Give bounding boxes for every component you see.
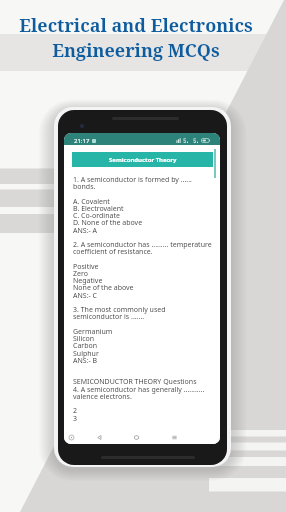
staticText: 4. A semiconductor has generally .......… <box>73 385 205 395</box>
staticText: Semiconductor Theory <box>109 156 177 164</box>
staticText: Germanium <box>73 327 113 337</box>
staticText: None of the above <box>73 283 134 293</box>
staticText: Sulphur <box>73 349 99 359</box>
staticText: Positive <box>73 262 99 272</box>
staticText: coefficient of resistance. <box>73 247 153 257</box>
button[interactable]: Recents <box>170 433 179 442</box>
staticText: 2 <box>73 406 78 416</box>
staticText: ANS:- A <box>73 226 98 236</box>
staticText: Carbon <box>73 341 98 351</box>
staticText: Zero <box>73 269 88 279</box>
staticText: 21:17 <box>74 137 90 145</box>
staticText: 3. The most commonly used <box>73 305 166 315</box>
staticText: bonds. <box>73 182 96 192</box>
staticText: 3 <box>73 414 78 424</box>
staticText: Negative <box>73 276 103 286</box>
staticText: ANS:- C <box>73 291 98 301</box>
staticText: Engineering MCQs <box>52 38 220 63</box>
staticText: semiconductor is ....... <box>73 312 145 322</box>
staticText: B. Electrovalent <box>73 204 124 214</box>
staticText: Electrical and Electronics <box>19 13 253 38</box>
staticText: valence electrons. <box>73 392 132 402</box>
staticText: ANS:- B <box>73 356 98 366</box>
staticText: Silicon <box>73 334 95 344</box>
button[interactable]: Assistant <box>67 433 76 442</box>
staticText: 2. A semiconductor has ......... tempera… <box>73 240 212 250</box>
staticText: 1. A semiconductor is formed by ...... <box>73 175 192 185</box>
staticText: SEMICONDUCTOR THEORY Questions <box>73 377 197 387</box>
button[interactable]: Back <box>95 433 104 442</box>
staticText: C. Co-ordinate <box>73 211 120 221</box>
button[interactable]: Home <box>132 433 141 442</box>
staticText: D. None of the above <box>73 218 143 228</box>
button[interactable]: Semiconductor Theory <box>72 152 213 167</box>
staticText: A. Covalent <box>73 197 110 207</box>
